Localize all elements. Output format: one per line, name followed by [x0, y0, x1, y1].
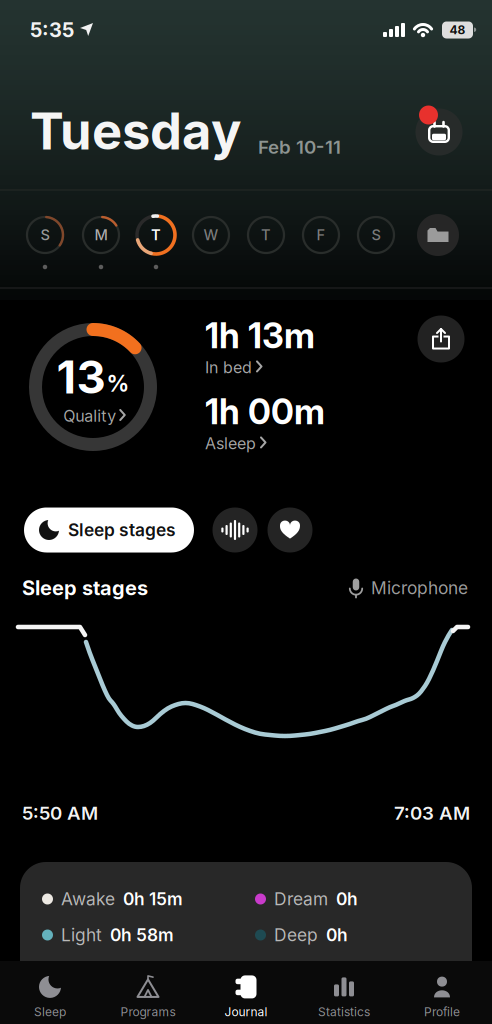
staticText: Microphone	[371, 578, 468, 598]
staticText: 5:50 AM	[22, 802, 98, 824]
button[interactable]: Calendar	[415, 108, 462, 155]
staticText: Programs	[120, 1005, 175, 1019]
staticText: Sleep stages	[68, 520, 176, 540]
button[interactable]: Statistics	[295, 967, 393, 1024]
staticText: %	[106, 370, 129, 397]
staticText: Feb 10-11	[258, 136, 341, 158]
staticText: 0h	[336, 889, 358, 909]
button[interactable]: Microphone	[348, 578, 468, 598]
button[interactable]: Journal	[197, 967, 295, 1024]
button[interactable]: 1h 00m	[205, 391, 375, 453]
button[interactable]: Sleep	[1, 967, 99, 1024]
staticText: 1h 00m	[205, 391, 325, 432]
button[interactable]: Heart rate	[267, 507, 312, 552]
button[interactable]: Sunday	[0, 0, 492, 1024]
staticText: Asleep	[205, 434, 256, 453]
staticText: 0h	[326, 925, 348, 945]
button[interactable]: Programs	[99, 967, 197, 1024]
staticText: T	[151, 226, 161, 244]
button[interactable]: 1h 13m	[205, 315, 375, 377]
staticText: Deep	[274, 925, 318, 945]
staticText: 13	[56, 350, 105, 404]
staticText: 1h 13m	[205, 315, 315, 356]
button[interactable]: Share	[417, 315, 464, 362]
button[interactable]: Quality	[63, 407, 127, 425]
staticText: Light	[61, 925, 102, 945]
staticText: S	[40, 226, 49, 244]
staticText: 5:35	[30, 18, 74, 42]
button[interactable]: Monday	[0, 0, 492, 1024]
button[interactable]: Saved nights	[417, 214, 459, 256]
staticText: Journal	[224, 1005, 267, 1019]
staticText: Awake	[61, 889, 115, 909]
button[interactable]: Sleep stages	[24, 507, 194, 552]
button[interactable]: Profile	[393, 967, 491, 1024]
staticText: M	[94, 226, 107, 244]
staticText: Sleep stages	[22, 576, 148, 600]
staticText: S	[371, 226, 380, 244]
button[interactable]: Wednesday	[0, 0, 492, 1024]
button[interactable]: Thursday	[0, 0, 492, 1024]
staticText: T	[261, 226, 271, 244]
staticText: 48	[449, 23, 465, 37]
staticText: 7:03 AM	[394, 802, 470, 824]
staticText: W	[203, 226, 218, 244]
staticText: Profile	[424, 1005, 460, 1019]
staticText: F	[316, 226, 325, 244]
staticText: In bed	[205, 358, 252, 377]
staticText: 0h 58m	[110, 925, 174, 945]
button[interactable]: Sounds	[212, 507, 257, 552]
button[interactable]: Saturday	[0, 0, 492, 1024]
staticText: Tuesday	[30, 101, 242, 161]
staticText: Sleep	[34, 1005, 66, 1019]
staticText: Dream	[274, 889, 328, 909]
staticText: Statistics	[318, 1005, 370, 1019]
button[interactable]: Tuesday	[136, 215, 175, 254]
button[interactable]: Friday	[0, 0, 492, 1024]
staticText: Quality	[63, 407, 116, 425]
staticText: 0h 15m	[123, 889, 183, 909]
